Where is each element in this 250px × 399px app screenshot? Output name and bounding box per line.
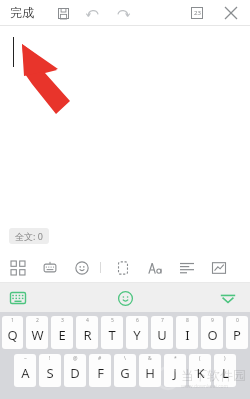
button[interactable]: Save	[52, 2, 74, 24]
button[interactable]: 4	[76, 316, 98, 349]
staticText: S	[46, 364, 54, 382]
staticText: A	[21, 364, 30, 382]
staticText: 1	[11, 317, 14, 324]
staticText: G	[120, 364, 130, 382]
staticText: E	[58, 326, 66, 344]
button[interactable]: Undo	[82, 2, 104, 24]
button[interactable]: 6	[126, 316, 148, 349]
button[interactable]: (	[189, 354, 211, 387]
staticText: 7	[161, 317, 164, 324]
staticText: P	[233, 326, 241, 344]
staticText: 2	[36, 317, 39, 324]
staticText: @	[73, 355, 78, 362]
button[interactable]: Widgets	[6, 256, 30, 280]
staticText: 8	[186, 317, 189, 324]
button[interactable]: Redo	[112, 2, 134, 24]
button[interactable]: @	[64, 354, 86, 387]
staticText: 6	[136, 317, 139, 324]
button[interactable]: 完成	[6, 3, 38, 22]
button[interactable]: )	[214, 354, 236, 387]
staticText: 0	[236, 317, 239, 324]
button[interactable]: Sticker	[70, 256, 94, 280]
staticText: *	[174, 355, 177, 362]
button[interactable]: 7	[151, 316, 173, 349]
button[interactable]: Keyboard	[6, 286, 30, 310]
staticText: www.downkuai.com	[181, 383, 229, 390]
button[interactable]: 1	[2, 316, 23, 349]
button[interactable]: 9	[201, 316, 223, 349]
button[interactable]: 2	[26, 316, 48, 349]
button[interactable]: \	[114, 354, 136, 387]
staticText: #	[98, 355, 102, 362]
button[interactable]: &	[139, 354, 161, 387]
button[interactable]: Date	[186, 2, 208, 24]
button[interactable]: 全文: 0	[9, 228, 49, 244]
staticText: D	[70, 364, 80, 382]
staticText: K	[196, 364, 205, 382]
button[interactable]: Hide keyboard	[216, 286, 240, 310]
button[interactable]: 3	[51, 316, 73, 349]
button[interactable]: Font	[143, 256, 167, 280]
staticText: 9	[211, 317, 214, 324]
staticText: U	[157, 326, 167, 344]
button[interactable]: *	[164, 354, 186, 387]
staticText: H	[145, 364, 155, 382]
staticText: J	[173, 364, 177, 382]
staticText: 全文: 0	[15, 230, 43, 242]
staticText: !	[49, 355, 51, 362]
button[interactable]: ~	[14, 354, 36, 387]
staticText: \	[124, 355, 126, 362]
button[interactable]: 5	[101, 316, 123, 349]
staticText: (	[199, 355, 201, 362]
staticText: 5	[111, 317, 114, 324]
button[interactable]: Voice input	[38, 256, 62, 280]
button[interactable]: !	[39, 354, 61, 387]
button[interactable]: 0	[226, 316, 248, 349]
staticText: W	[31, 326, 44, 344]
button[interactable]: Close	[220, 2, 242, 24]
button[interactable]: #	[89, 354, 111, 387]
button[interactable]: 8	[176, 316, 198, 349]
staticText: F	[97, 364, 104, 382]
staticText: 23	[194, 9, 201, 17]
staticText: )	[224, 355, 226, 362]
staticText: Y	[133, 326, 141, 344]
staticText: 3	[61, 317, 64, 324]
staticText: &	[148, 355, 152, 362]
button[interactable]: Card	[111, 256, 135, 280]
staticText: L	[222, 364, 229, 382]
staticText: R	[83, 326, 92, 344]
staticText: 完成	[10, 5, 34, 20]
staticText: O	[207, 326, 218, 344]
button[interactable]: Align	[175, 256, 199, 280]
button[interactable]: Emoji	[113, 286, 137, 310]
staticText: Q	[7, 326, 18, 344]
staticText: I	[185, 326, 190, 344]
button[interactable]: Chart	[207, 256, 231, 280]
staticText: ~	[24, 355, 27, 362]
staticText: 当下软件园	[181, 367, 246, 383]
staticText: T	[108, 326, 116, 344]
staticText: 4	[86, 317, 89, 324]
